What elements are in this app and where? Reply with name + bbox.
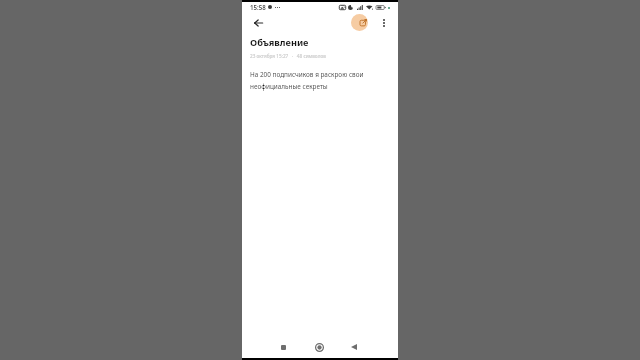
button[interactable]: Edit xyxy=(351,14,368,31)
staticText: Объявление xyxy=(250,36,309,49)
button[interactable]: Home xyxy=(311,340,325,354)
button[interactable]: Back xyxy=(250,15,266,31)
button[interactable]: Recents xyxy=(276,340,290,354)
button[interactable]: More options xyxy=(377,16,391,30)
button[interactable]: На 200 подписчиков я раскрою свои неофиц… xyxy=(242,70,398,336)
staticText: 23 октября 15:27 · 48 символов xyxy=(250,53,326,59)
staticText: На 200 подписчиков я раскрою свои неофиц… xyxy=(250,70,386,90)
staticText: 15:58 xyxy=(250,3,266,11)
button[interactable]: Back xyxy=(346,340,360,354)
